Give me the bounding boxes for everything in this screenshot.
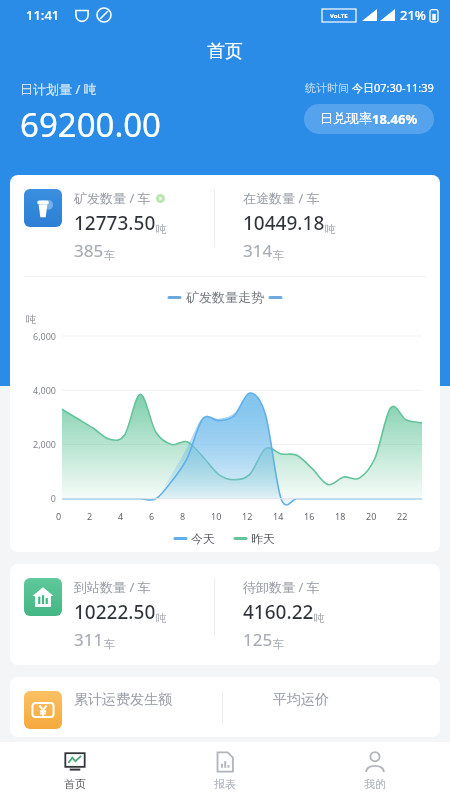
staticText: 10449.18 — [243, 210, 325, 236]
staticText: 吨 — [156, 611, 167, 625]
staticText: 日兑现率 — [320, 110, 372, 126]
staticText: VoLTE — [330, 12, 348, 20]
staticText: 6,000 — [32, 330, 56, 342]
staticText: 11:41 — [26, 6, 60, 24]
staticText: 累计运费发生额 — [74, 691, 172, 709]
staticText: 18 — [335, 510, 346, 522]
staticText: 我的 — [364, 777, 386, 791]
staticText: 0 — [50, 492, 56, 504]
staticText: 16 — [304, 510, 315, 522]
staticText: 吨 — [156, 222, 167, 236]
staticText: 4,000 — [32, 384, 56, 396]
staticText: 待卸数量 / 车 — [243, 578, 320, 596]
staticText: 0 — [56, 510, 62, 522]
button[interactable]: 首页 — [0, 742, 150, 800]
staticText: 车 — [104, 637, 115, 651]
button[interactable]: 日兑现率 — [304, 104, 434, 134]
staticText: 22 — [397, 510, 408, 522]
staticText: 4160.22 — [243, 599, 314, 625]
staticText: 车 — [273, 637, 284, 651]
staticText: 69200.00 — [20, 102, 161, 147]
button[interactable]: 报表 — [150, 742, 300, 800]
staticText: 314 — [243, 239, 273, 262]
staticText: 昨天 — [251, 531, 275, 546]
staticText: 矿发数量走势 — [186, 289, 264, 305]
staticText: 日计划量 / 吨 — [20, 80, 97, 98]
staticText: 吨 — [325, 222, 336, 236]
staticText: 今日07:30-11:39 — [352, 80, 434, 95]
staticText: 到站数量 / 车 — [74, 578, 151, 596]
staticText: 在途数量 / 车 — [243, 189, 320, 207]
staticText: 20 — [366, 510, 377, 522]
staticText: 首页 — [207, 40, 243, 63]
staticText: 125 — [243, 628, 273, 651]
button[interactable]: 累计运费发生额 — [10, 677, 440, 737]
staticText: 10222.50 — [74, 599, 156, 625]
staticText: 矿发数量 / 车 — [74, 189, 151, 207]
staticText: 12773.50 — [74, 210, 156, 236]
staticText: 报表 — [214, 777, 236, 791]
staticText: 6 — [149, 510, 155, 522]
staticText: 2,000 — [32, 438, 56, 450]
staticText: 10 — [211, 510, 222, 522]
staticText: 统计时间 — [305, 80, 352, 95]
staticText: 385 — [74, 239, 104, 262]
staticText: 14 — [273, 510, 284, 522]
staticText: 吨 — [314, 611, 325, 625]
staticText: 吨 — [26, 313, 36, 326]
staticText: 今天 — [191, 531, 215, 546]
staticText: 8 — [180, 510, 186, 522]
staticText: 车 — [104, 248, 115, 262]
staticText: 18.46% — [372, 110, 418, 128]
staticText: 首页 — [64, 777, 86, 791]
staticText: 4 — [118, 510, 124, 522]
staticText: 21% — [400, 6, 426, 24]
button[interactable]: 到站数量 / 车 — [10, 564, 440, 665]
staticText: 311 — [74, 628, 104, 651]
button[interactable]: 我的 — [300, 742, 450, 800]
staticText: 2 — [87, 510, 93, 522]
staticText: 平均运价 — [273, 691, 329, 709]
button[interactable]: 矿发数量 / 车 — [10, 175, 440, 552]
staticText: 车 — [273, 248, 284, 262]
staticText: 12 — [242, 510, 253, 522]
